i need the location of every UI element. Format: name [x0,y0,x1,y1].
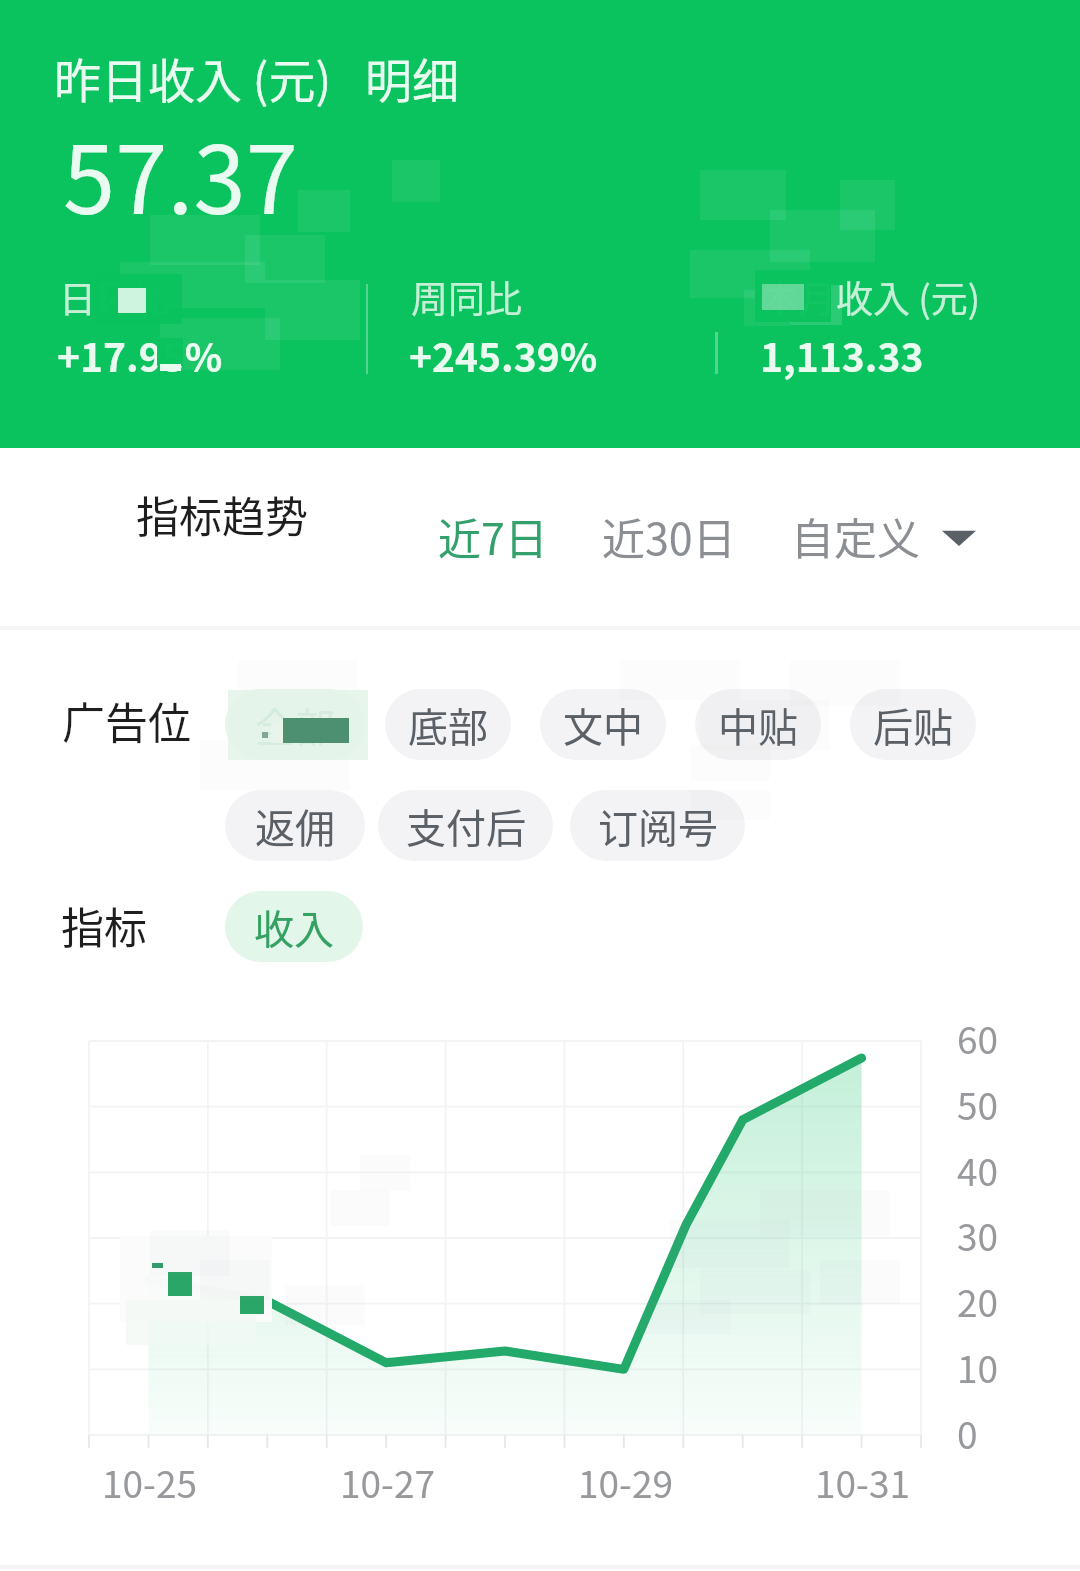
button[interactable]: 全部 [225,689,365,760]
staticText: 10-29 [578,1455,673,1509]
staticText: 收入 [254,898,334,956]
staticText: 订阅号 [598,797,718,855]
button[interactable]: 返佣 [225,790,365,861]
staticText: 日环比 [59,270,170,324]
staticText: 1,113.33 [760,327,924,383]
staticText: 昨日收入 (元) [54,43,332,111]
button[interactable]: 收入 [225,891,363,962]
staticText: 本月收入 (元) [762,270,981,324]
button[interactable]: 后贴 [850,689,976,760]
staticText: 10 [957,1340,999,1394]
staticText: 30 [957,1208,999,1262]
staticText: 60 [957,1011,999,1065]
staticText: 明细 [365,43,459,111]
staticText: 40 [957,1143,999,1197]
staticText: 10-27 [340,1455,435,1509]
button[interactable]: 近30日 [602,505,736,567]
staticText: 全部 [255,696,335,754]
staticText: +17.95% [57,327,223,383]
staticText: 0 [957,1406,978,1460]
button[interactable]: 自定义 [791,505,976,567]
staticText: 周同比 [411,270,522,324]
staticText: 20 [957,1274,999,1328]
staticText: 底部 [408,696,488,754]
button[interactable]: 近7日 [438,505,548,567]
staticText: 广告位 [62,689,191,751]
other: Expand date range [942,523,976,549]
button[interactable]: 文中 [540,689,666,760]
staticText: 支付后 [406,797,526,855]
staticText: 中贴 [718,696,798,754]
button[interactable]: 支付后 [378,790,553,861]
staticText: 后贴 [873,696,953,754]
button[interactable]: 中贴 [695,689,821,760]
staticText: 10-25 [102,1455,197,1509]
staticText: 57.37 [63,105,298,241]
staticText: 指标趋势 [136,483,308,545]
button[interactable]: 底部 [385,689,511,760]
staticText: 自定义 [791,505,920,567]
staticText: 近7日 [438,505,548,567]
staticText: 文中 [563,696,643,754]
staticText: +245.39% [409,327,598,383]
staticText: 50 [957,1077,999,1131]
staticText: 近30日 [602,505,736,567]
staticText: 返佣 [255,797,335,855]
button[interactable]: 昨日收入 (元) [54,43,459,111]
staticText: 指标 [61,894,147,956]
button[interactable]: 订阅号 [570,790,745,861]
staticText: 10-31 [815,1455,910,1509]
